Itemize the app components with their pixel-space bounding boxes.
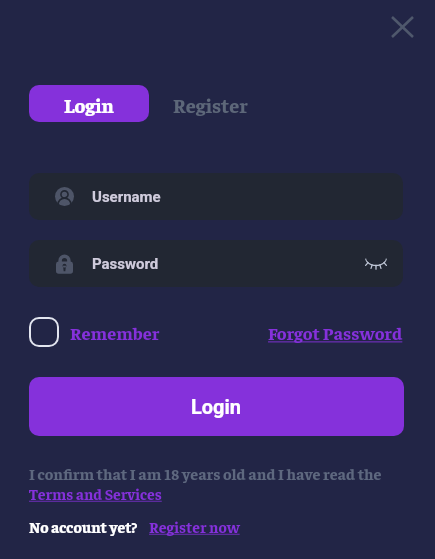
staticText: Username: [92, 188, 161, 206]
staticText: Terms and Services: [29, 484, 162, 503]
staticText: Remember: [70, 321, 160, 344]
staticText: Register: [173, 92, 248, 117]
staticText: I confirm that I am 18 years old and I h…: [29, 464, 382, 484]
staticText: Forgot Password: [268, 321, 403, 344]
staticText: Login: [64, 92, 114, 117]
button[interactable]: Close: [382, 7, 422, 47]
button[interactable]: Username field: [29, 173, 403, 220]
staticText: Login: [191, 395, 242, 418]
button[interactable]: Forgot Password: [268, 321, 403, 344]
button[interactable]: Password field: [29, 240, 403, 287]
staticText: No account yet?: [29, 517, 138, 536]
button[interactable]: Login: [29, 377, 404, 436]
button[interactable]: Register now: [149, 517, 240, 536]
staticText: Password: [92, 255, 159, 273]
button[interactable]: Login: [29, 85, 149, 122]
button[interactable]: Show password: [363, 251, 389, 277]
staticText: Register now: [149, 517, 240, 536]
button[interactable]: Terms and Services: [29, 484, 162, 503]
button[interactable]: Register: [149, 85, 266, 122]
button[interactable]: Remember: [29, 317, 160, 347]
